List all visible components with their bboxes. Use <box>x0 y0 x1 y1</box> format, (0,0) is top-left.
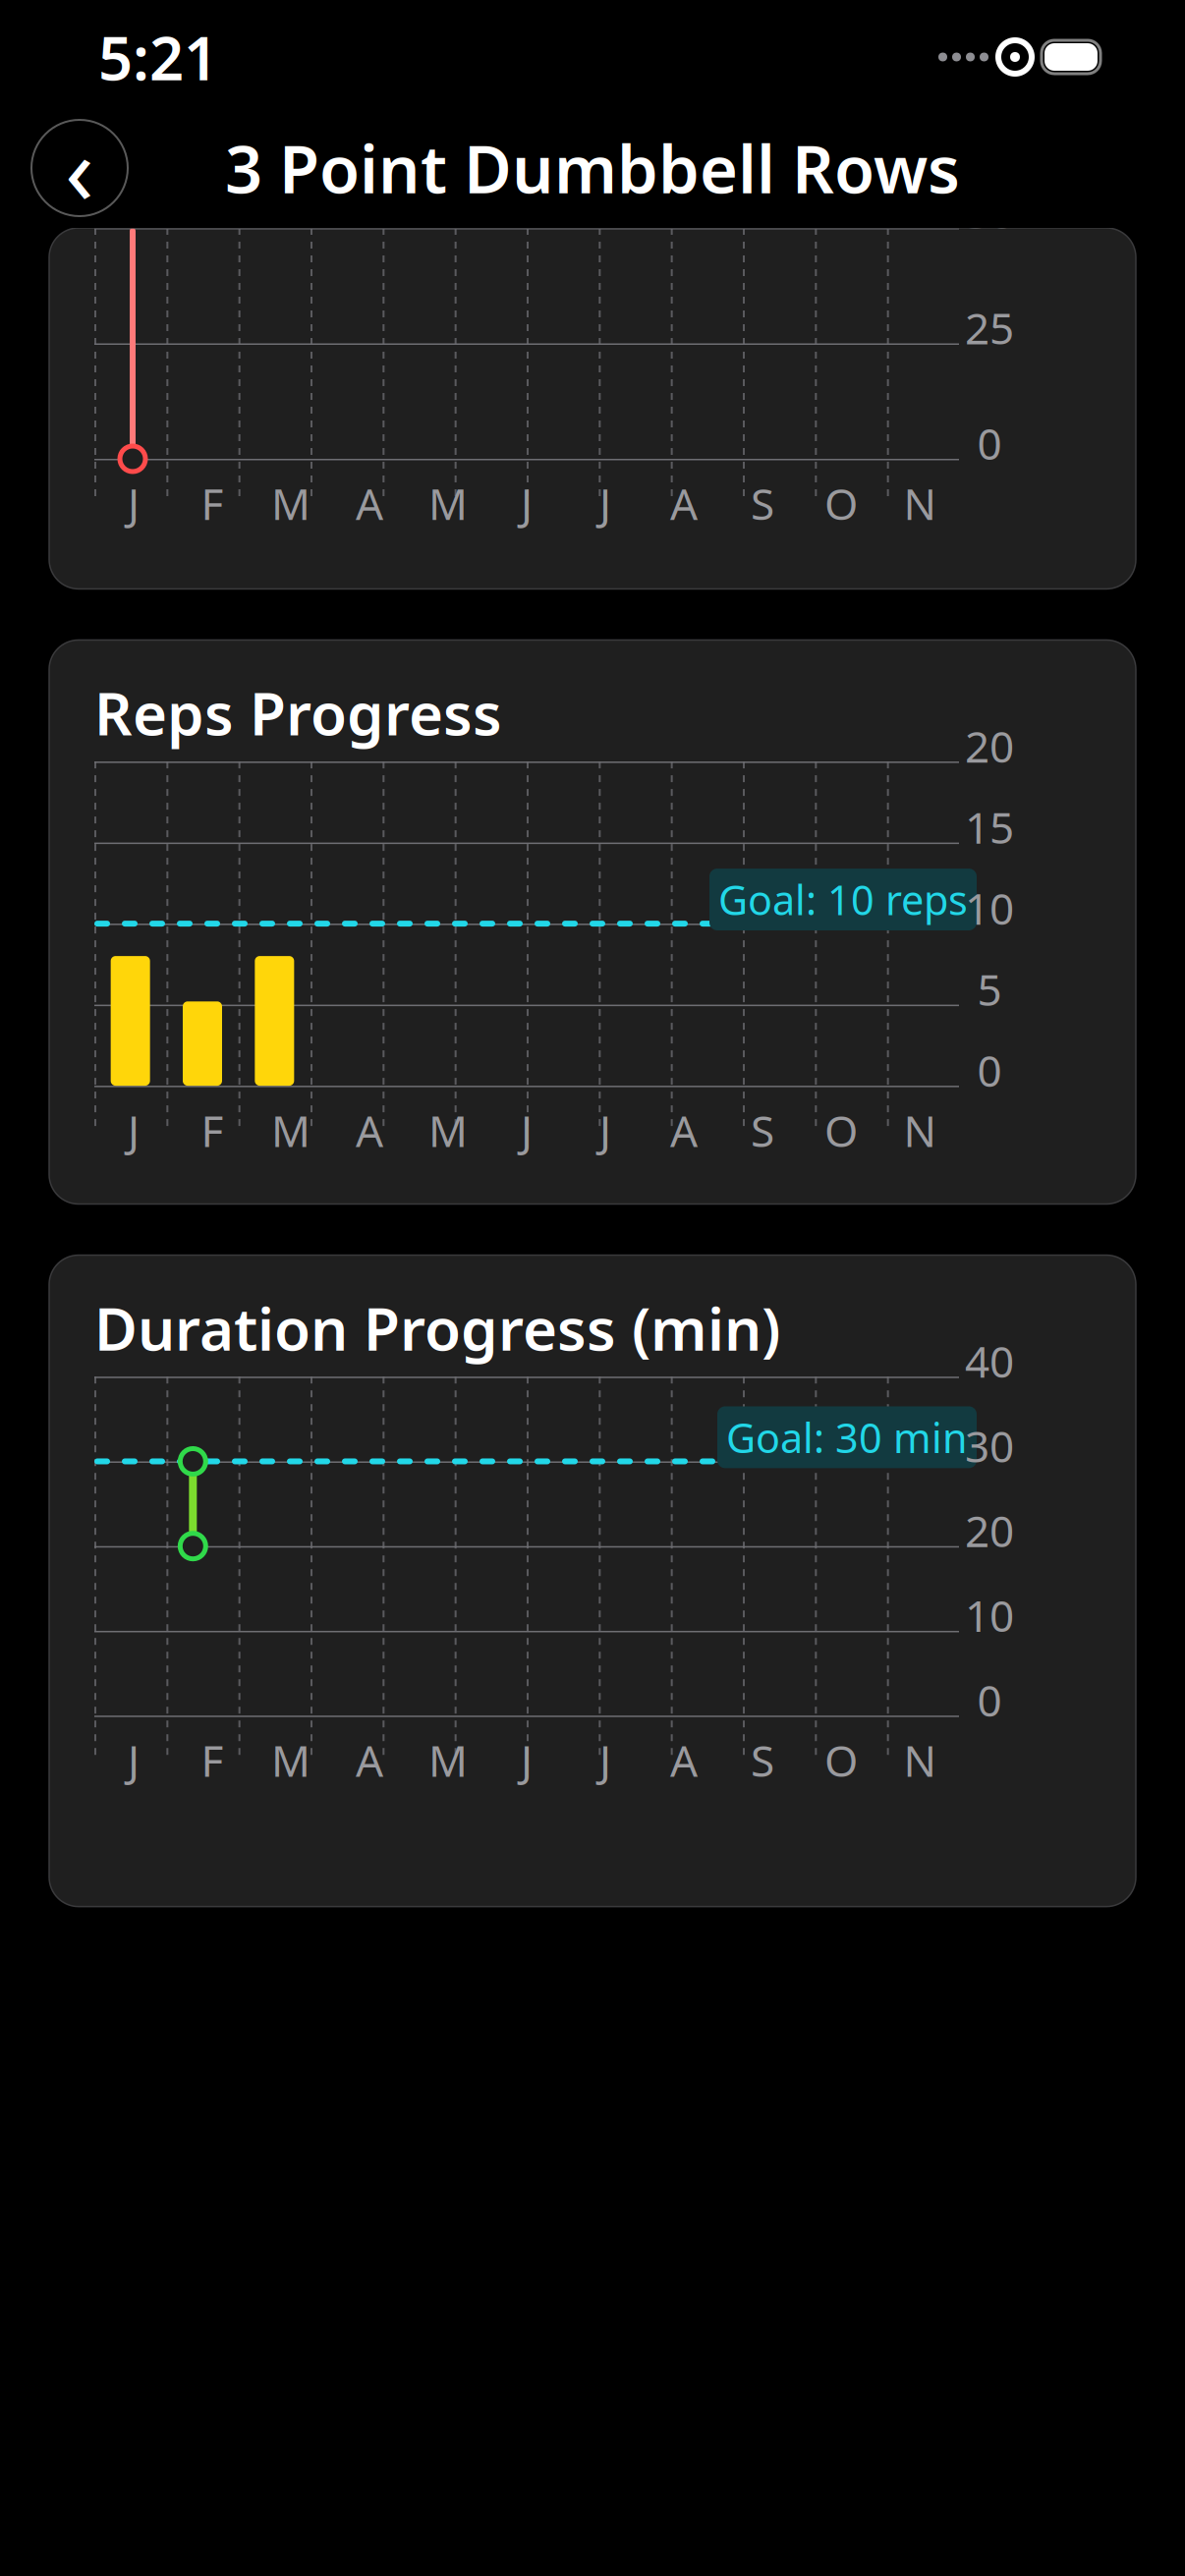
staticText: F <box>201 1101 224 1159</box>
staticText: A <box>356 1101 383 1159</box>
staticText: J <box>128 1101 140 1159</box>
staticText: S <box>751 475 774 532</box>
staticText: 0 <box>977 414 1002 472</box>
staticText: J <box>128 1731 140 1789</box>
staticText: Reps Progress <box>94 673 502 752</box>
staticText: 0 <box>977 1041 1002 1099</box>
staticText: 25 <box>965 299 1014 356</box>
staticText: 10 <box>965 879 1014 937</box>
staticText: 40 <box>965 1332 1014 1390</box>
staticText: J <box>521 1101 533 1159</box>
staticText: 50 <box>965 184 1014 241</box>
button[interactable]: Back <box>31 120 128 216</box>
staticText: 30 <box>965 1417 1014 1474</box>
staticText: M <box>271 1731 310 1789</box>
staticText: J <box>128 475 140 532</box>
staticText: 20 <box>965 717 1014 774</box>
staticText: O <box>824 1101 858 1159</box>
staticText: N <box>903 1101 936 1159</box>
staticText: M <box>428 1731 468 1789</box>
staticText: O <box>824 475 858 532</box>
staticText: N <box>903 1731 936 1789</box>
staticText: F <box>201 1731 224 1789</box>
staticText: S <box>751 1101 774 1159</box>
staticText: M <box>428 1101 468 1159</box>
staticText: A <box>670 1731 698 1789</box>
staticText: 15 <box>965 798 1014 856</box>
staticText: M <box>271 1101 310 1159</box>
staticText: F <box>201 475 224 532</box>
staticText: 20 <box>965 1502 1014 1559</box>
staticText: O <box>824 1731 858 1789</box>
staticText: 5 <box>977 960 1002 1018</box>
staticText: N <box>903 475 936 532</box>
staticText: S <box>751 1731 774 1789</box>
staticText: Goal: 10 reps <box>718 873 968 926</box>
staticText: 10 <box>965 1586 1014 1644</box>
staticText: J <box>599 475 611 532</box>
staticText: 3 Point Dumbbell Rows <box>225 124 960 211</box>
staticText: J <box>599 1101 611 1159</box>
staticText: J <box>521 475 533 532</box>
staticText: Goal: 30 min <box>726 1410 968 1464</box>
staticText: A <box>670 475 698 532</box>
staticText: Duration Progress (min) <box>94 1288 780 1367</box>
staticText: ‹ <box>65 105 94 231</box>
staticText: M <box>428 475 468 532</box>
staticText: A <box>670 1101 698 1159</box>
staticText: A <box>356 1731 383 1789</box>
staticText: 5:21 <box>98 17 218 97</box>
staticText: M <box>271 475 310 532</box>
staticText: J <box>521 1731 533 1789</box>
staticText: J <box>599 1731 611 1789</box>
staticText: 0 <box>977 1671 1002 1729</box>
staticText: A <box>356 475 383 532</box>
